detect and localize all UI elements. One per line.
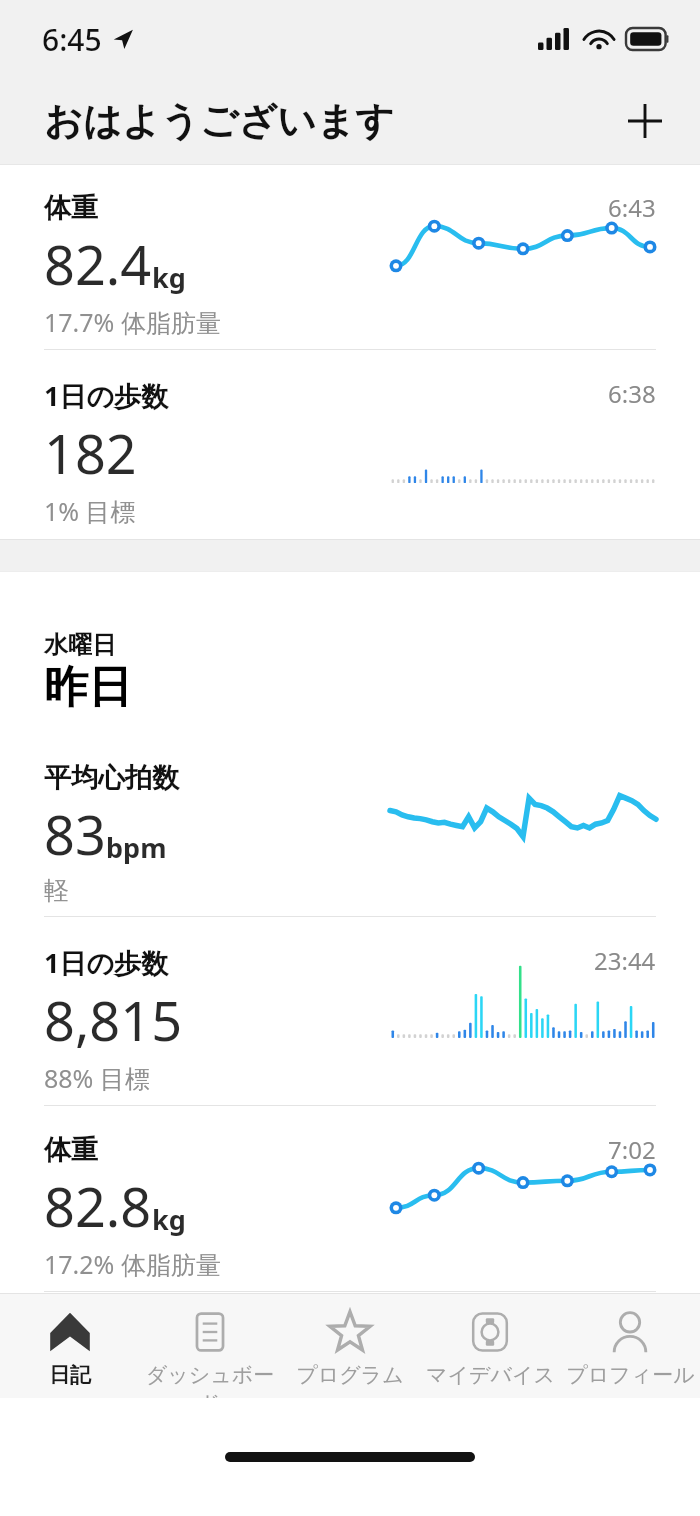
button[interactable]: プログラム [280,1294,420,1398]
staticText: ダッシュボード [140,1362,280,1398]
other: プログラム [327,1309,373,1355]
other: マイデバイス [469,1311,511,1353]
staticText: 7:02 [608,1133,656,1166]
staticText: 8,815 [44,983,183,1057]
staticText: 17.7% 体脂肪量 [44,305,221,339]
button[interactable]: 体重 [0,1107,700,1293]
staticText: マイデバイス [426,1362,555,1388]
staticText: 1% 目標 [44,494,136,528]
staticText: 182 [44,416,137,490]
staticText: 6:43 [608,191,656,224]
staticText: 23:44 [594,944,656,977]
staticText: 17.2% 体脂肪量 [44,1247,221,1281]
staticText: 平均心拍数 [44,761,179,795]
staticText: プロフィール [566,1362,695,1388]
staticText: プログラム [296,1362,404,1388]
button[interactable]: 体重 [0,165,700,351]
other: プロフィール [608,1310,652,1354]
button[interactable]: 1日の歩数 [0,351,700,539]
staticText: 83 [44,797,106,871]
staticText: 82.4 [44,227,152,301]
staticText: bpm [106,829,167,866]
staticText: 88% 目標 [44,1061,150,1095]
staticText: 6:38 [608,377,656,410]
button[interactable]: マイデバイス [420,1294,560,1398]
staticText: 昨日 [44,660,132,715]
staticText: 1日の歩数 [44,944,169,981]
staticText: 体重 [44,1133,98,1167]
button[interactable]: 日記 [0,1294,140,1398]
staticText: 82.8 [44,1169,152,1243]
staticText: 日記 [49,1362,91,1388]
other: ダッシュボード [189,1311,231,1353]
button[interactable]: ダッシュボード [140,1294,280,1398]
staticText: kg [152,259,186,296]
staticText: 水曜日 [44,630,116,660]
button[interactable]: 1日の歩数 [0,918,700,1107]
staticText: おはようございます [44,97,395,145]
button[interactable]: Add [614,90,676,152]
staticText: kg [152,1201,186,1238]
staticText: 体重 [44,191,98,225]
button[interactable]: プロフィール [560,1294,700,1398]
staticText: 軽 [44,875,69,906]
other: 日記 [48,1310,92,1354]
staticText: 1日の歩数 [44,377,169,414]
staticText: 6:45 [42,19,102,60]
button[interactable]: 平均心拍数 [0,735,700,918]
